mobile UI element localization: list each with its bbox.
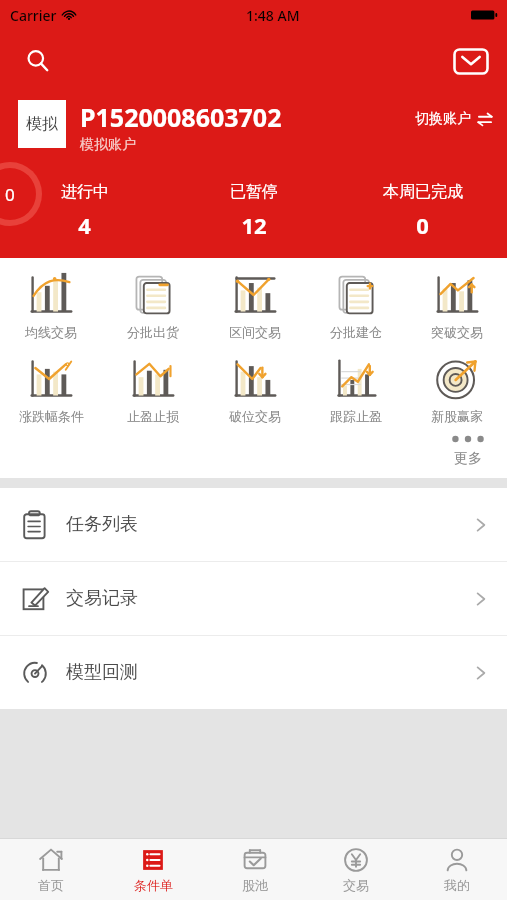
button[interactable]: 交易记录 [0,562,507,635]
staticText: Carrier [10,6,57,25]
staticText: 分批建仓 [330,324,382,340]
button[interactable]: 涨跌幅条件 [0,352,102,428]
button[interactable]: 本周已完成 [338,182,507,240]
staticText: 1:48 AM [246,6,300,25]
staticText: 突破交易 [431,324,483,340]
button[interactable]: 交易 [305,839,406,900]
button[interactable]: Search [16,39,60,83]
button[interactable]: 我的 [406,839,507,900]
staticText: 进行中 [61,182,109,202]
staticText: 模型回测 [66,661,138,684]
staticText: 区间交易 [229,324,281,340]
button[interactable]: 止盈止损 [102,352,204,428]
staticText: 首页 [38,877,64,893]
staticText: 任务列表 [66,513,138,536]
staticText: 本周已完成 [383,182,463,202]
staticText: 股池 [242,877,268,893]
staticText: 更多 [454,450,482,468]
staticText: 0 [416,210,429,240]
button[interactable]: 突破交易 [406,268,507,344]
staticText: 交易记录 [66,587,138,610]
staticText: 切换账户 [415,110,471,128]
staticText: 均线交易 [25,324,77,340]
staticText: 4 [78,210,91,240]
button[interactable]: 进行中 [0,182,169,240]
button[interactable]: 破位交易 [204,352,305,428]
button[interactable]: 股池 [204,839,305,900]
staticText: 破位交易 [229,408,281,424]
staticText: 分批出货 [127,324,179,340]
button[interactable]: 已暂停 [169,182,338,240]
button[interactable]: 分批建仓 [305,268,406,344]
staticText: 已暂停 [230,182,278,202]
staticText: 模拟 [26,114,58,134]
staticText: 止盈止损 [127,408,179,424]
staticText: 0 [5,183,15,206]
staticText: P1520008603702 [80,100,282,134]
button[interactable]: 首页 [0,839,102,900]
button[interactable]: 条件单 [102,839,204,900]
button[interactable]: 新股赢家 [406,352,507,428]
staticText: 新股赢家 [431,408,483,424]
staticText: 12 [241,210,267,240]
button[interactable]: 分批出货 [102,268,204,344]
button[interactable]: Messages [449,43,493,79]
button[interactable]: 区间交易 [204,268,305,344]
staticText: 条件单 [134,877,173,893]
staticText: 模拟账户 [80,136,136,154]
staticText: 交易 [343,877,369,893]
button[interactable]: 模型回测 [0,636,507,709]
button[interactable]: 均线交易 [0,268,102,344]
staticText: 我的 [444,877,470,893]
button[interactable]: 更多 [451,434,485,468]
button[interactable]: 跟踪止盈 [305,352,406,428]
button[interactable]: 切换账户 [415,110,493,128]
staticText: 跟踪止盈 [330,408,382,424]
staticText: 涨跌幅条件 [19,408,84,424]
button[interactable]: 任务列表 [0,488,507,561]
